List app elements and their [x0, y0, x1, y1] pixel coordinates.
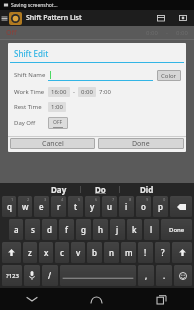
- staticText: q: [7, 201, 12, 212]
- staticText: Work Time: [14, 88, 48, 96]
- button[interactable]: Space: [60, 265, 136, 286]
- button[interactable]: k: [127, 219, 142, 240]
- button[interactable]: Color: [157, 70, 181, 81]
- button[interactable]: 7: [102, 196, 117, 217]
- button[interactable]: !: [138, 242, 153, 263]
- staticText: ?123: [6, 272, 19, 280]
- button[interactable]: a: [9, 219, 23, 240]
- button[interactable]: Day: [38, 183, 80, 195]
- staticText: 2: [27, 197, 30, 202]
- button[interactable]: Menu: [0, 10, 9, 26]
- button[interactable]: j: [110, 219, 125, 240]
- staticText: Rest Time: [14, 103, 48, 111]
- staticText: t: [74, 201, 78, 212]
- button[interactable]: 0:00: [78, 87, 96, 97]
- button[interactable]: Voice input: [24, 265, 40, 286]
- button[interactable]: Calendar: [150, 10, 172, 26]
- staticText: 5: [78, 197, 81, 202]
- staticText: Off: [6, 28, 17, 38]
- button[interactable]: Done: [161, 219, 192, 240]
- button[interactable]: 6: [85, 196, 100, 217]
- button[interactable]: [48, 69, 153, 81]
- staticText: Saving screenshot...: [11, 2, 58, 9]
- staticText: x: [44, 247, 49, 258]
- staticText: Shift Pattern List: [26, 13, 150, 23]
- staticText: Done: [132, 139, 150, 149]
- button[interactable]: 1:00: [48, 102, 66, 112]
- button[interactable]: 1: [2, 196, 16, 217]
- button[interactable]: s: [25, 219, 40, 240]
- staticText: b: [92, 247, 97, 258]
- staticText: 16:00: [51, 88, 67, 96]
- button[interactable]: d: [42, 219, 57, 240]
- button[interactable]: Do: [81, 183, 119, 195]
- button[interactable]: l: [144, 219, 159, 240]
- button[interactable]: 5: [68, 196, 83, 217]
- button[interactable]: n: [104, 242, 119, 263]
- staticText: w: [22, 201, 29, 212]
- button[interactable]: f: [59, 219, 74, 240]
- staticText: .: [163, 270, 166, 281]
- button[interactable]: Did: [120, 183, 174, 195]
- staticText: !: [144, 247, 147, 258]
- button[interactable]: b: [87, 242, 102, 263]
- button[interactable]: Cancel: [10, 138, 95, 149]
- staticText: Do: [95, 184, 106, 195]
- button[interactable]: 8: [119, 196, 134, 217]
- button[interactable]: Back: [0, 288, 64, 310]
- button[interactable]: h: [93, 219, 108, 240]
- button[interactable]: ?: [155, 242, 170, 263]
- staticText: 8: [129, 197, 132, 202]
- staticText: OFF: [53, 119, 63, 126]
- staticText: Day Off: [14, 119, 48, 127]
- staticText: 0:00: [81, 88, 93, 96]
- staticText: Color: [161, 72, 177, 80]
- staticText: ,: [145, 270, 148, 281]
- button[interactable]: 9: [136, 196, 151, 217]
- staticText: 9: [146, 197, 149, 202]
- button[interactable]: .: [156, 265, 172, 286]
- staticText: Shift Edit: [14, 48, 49, 59]
- staticText: 1:00: [51, 103, 63, 111]
- staticText: k: [132, 224, 137, 235]
- staticText: i: [125, 201, 128, 212]
- staticText: f: [65, 224, 68, 235]
- staticText: l: [150, 224, 153, 235]
- button[interactable]: Camera: [172, 10, 194, 26]
- button[interactable]: ?123: [2, 265, 22, 286]
- button[interactable]: x: [39, 242, 53, 263]
- button[interactable]: Shift: [172, 242, 192, 263]
- staticText: c: [60, 247, 64, 258]
- button[interactable]: Emoji: [174, 265, 192, 286]
- staticText: r: [57, 201, 61, 212]
- button[interactable]: m: [121, 242, 136, 263]
- button[interactable]: Home: [64, 288, 129, 310]
- button[interactable]: c: [55, 242, 69, 263]
- staticText: 7:00: [99, 88, 111, 96]
- staticText: 4: [61, 197, 64, 202]
- staticText: Cancel: [42, 139, 64, 149]
- staticText: Shift Name: [14, 71, 48, 79]
- staticText: p: [158, 201, 163, 212]
- button[interactable]: g: [76, 219, 91, 240]
- button[interactable]: z: [23, 242, 37, 263]
- button[interactable]: 16:00: [48, 87, 70, 97]
- button[interactable]: v: [71, 242, 85, 263]
- button[interactable]: 2: [18, 196, 32, 217]
- button[interactable]: 3: [34, 196, 49, 217]
- button[interactable]: ,: [138, 265, 154, 286]
- button[interactable]: Done: [98, 138, 184, 149]
- button[interactable]: 0: [153, 196, 168, 217]
- staticText: ?: [161, 247, 165, 258]
- staticText: o: [141, 201, 146, 212]
- button[interactable]: Shift: [2, 242, 21, 263]
- button[interactable]: /: [42, 265, 58, 286]
- button[interactable]: 4: [51, 196, 66, 217]
- staticText: n: [109, 247, 115, 258]
- button[interactable]: Backspace: [170, 196, 192, 217]
- button[interactable]: Recent apps: [129, 288, 194, 310]
- button[interactable]: OFF: [48, 117, 68, 129]
- button[interactable]: App icon: [9, 12, 22, 25]
- staticText: Day: [51, 184, 67, 195]
- staticText: 0: [163, 197, 166, 202]
